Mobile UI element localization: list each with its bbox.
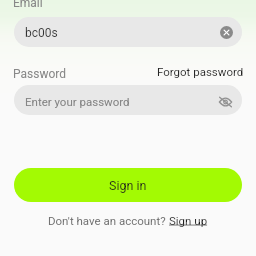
button[interactable]: Forgot password: [134, 63, 244, 80]
button[interactable]: Enter your password: [14, 85, 242, 115]
staticText: Enter your password: [25, 95, 130, 108]
button[interactable]: Clear text: [220, 26, 233, 39]
button[interactable]: Sign up: [169, 214, 208, 227]
button[interactable]: bc00s: [14, 17, 242, 47]
staticText: bc00s: [25, 26, 58, 40]
staticText: Email: [13, 0, 43, 10]
button[interactable]: Show password: [218, 96, 233, 108]
staticText: Forgot password: [157, 65, 244, 78]
button[interactable]: Sign in: [14, 168, 242, 202]
staticText: Password: [13, 67, 67, 81]
staticText: Sign in: [109, 178, 147, 193]
staticText: Don't have an account?: [48, 214, 169, 227]
